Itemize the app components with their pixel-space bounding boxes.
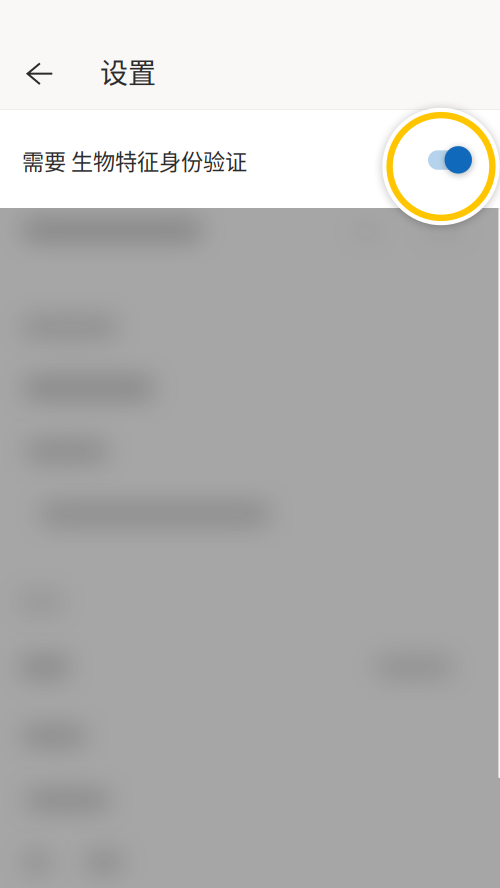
staticText: 需要 生物特征身份验证 — [22, 144, 247, 176]
staticText: 设置 — [100, 51, 156, 91]
button[interactable]: Back — [14, 48, 66, 100]
button[interactable]: 需要 生物特征身份验证 — [0, 110, 500, 208]
